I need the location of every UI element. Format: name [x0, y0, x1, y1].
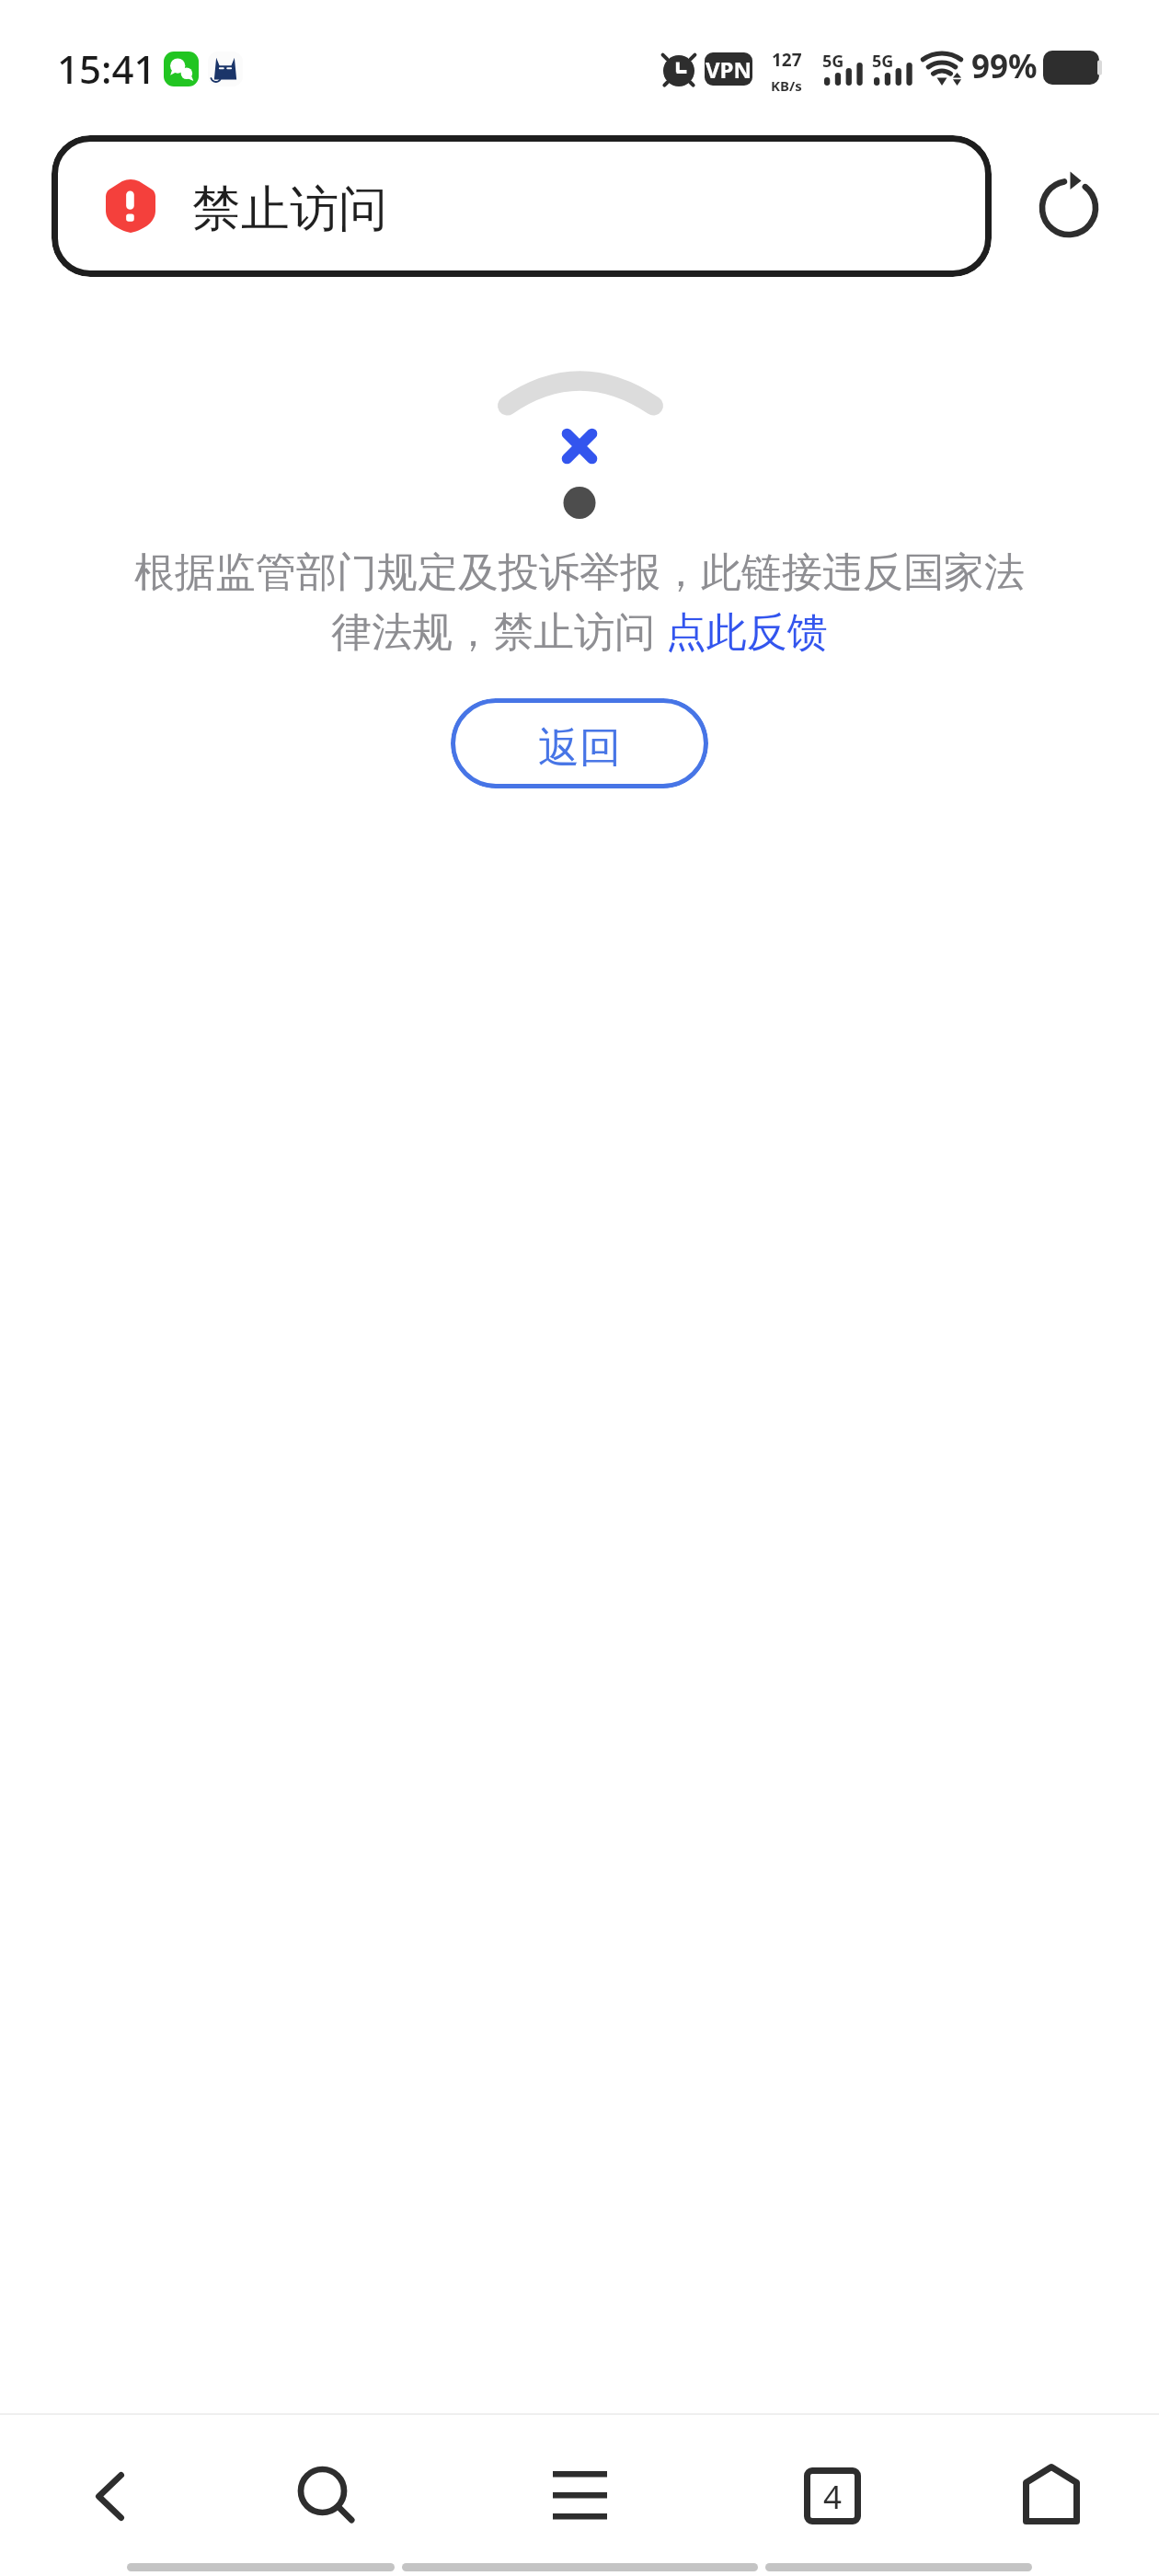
button[interactable]: Refresh — [1027, 167, 1110, 249]
staticText: 5G — [872, 50, 894, 73]
button[interactable]: Back — [52, 2438, 167, 2554]
staticText: 15:41 — [57, 42, 156, 95]
staticText: KB/s — [771, 76, 802, 95]
staticText: 5G — [822, 50, 844, 73]
staticText: VPN — [706, 54, 752, 85]
button[interactable]: Tabs — [775, 2438, 890, 2554]
staticText: 返回 — [538, 722, 621, 775]
staticText: 禁止访问 — [192, 178, 387, 240]
button[interactable]: Home — [993, 2436, 1109, 2552]
staticText: 4 — [823, 2475, 843, 2519]
button[interactable]: Search — [269, 2437, 384, 2553]
button[interactable]: 禁止访问 — [52, 135, 992, 277]
button[interactable]: 返回 — [451, 698, 708, 788]
staticText: 127 — [772, 48, 802, 72]
button[interactable]: Menu — [522, 2437, 637, 2553]
staticText: 99% — [971, 44, 1038, 88]
staticText: 根据监管部门规定及投诉举报，此链接违反国家法律法规，禁止访问 点此反馈 — [121, 547, 1038, 658]
